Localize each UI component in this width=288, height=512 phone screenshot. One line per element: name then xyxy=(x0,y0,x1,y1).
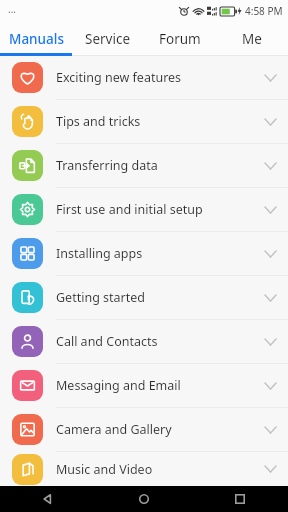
button[interactable]: Exciting new features xyxy=(0,56,288,100)
button[interactable]: Transferring data xyxy=(0,144,288,188)
button[interactable]: Recents xyxy=(192,486,288,512)
staticText: First use and initial setup xyxy=(56,201,265,218)
button[interactable]: Call and Contacts xyxy=(0,320,288,364)
button[interactable]: Installing apps xyxy=(0,232,288,276)
other: Expand Camera and Gallery xyxy=(265,427,276,433)
button[interactable]: Camera and Gallery xyxy=(0,408,288,452)
button[interactable]: Forum xyxy=(144,22,216,56)
other: Expand Exciting new features xyxy=(265,75,276,81)
staticText: Service xyxy=(85,30,131,48)
button[interactable]: Manuals xyxy=(0,22,72,56)
other: Expand Getting started xyxy=(265,295,276,301)
staticText: Forum xyxy=(159,30,201,48)
staticText: Exciting new features xyxy=(56,69,265,86)
staticText: Tips and tricks xyxy=(56,113,265,130)
other: Expand Messaging and Email xyxy=(265,383,276,389)
other: Expand Tips and tricks xyxy=(265,119,276,125)
staticText: Me xyxy=(242,30,262,48)
staticText: Messaging and Email xyxy=(56,377,265,394)
button[interactable]: Back xyxy=(0,486,96,512)
button[interactable]: Home xyxy=(96,486,192,512)
button[interactable]: Tips and tricks xyxy=(0,100,288,144)
staticText: Music and Video xyxy=(56,461,265,478)
staticText: Camera and Gallery xyxy=(56,421,265,438)
button[interactable]: Music and Video xyxy=(0,452,288,486)
other: Expand Music and Video xyxy=(265,466,276,472)
other: Expand Transferring data xyxy=(265,163,276,169)
button[interactable]: First use and initial setup xyxy=(0,188,288,232)
other: Expand Installing apps xyxy=(265,251,276,257)
other: Expand Call and Contacts xyxy=(265,339,276,345)
button[interactable]: Service xyxy=(72,22,144,56)
button[interactable]: Me xyxy=(216,22,288,56)
staticText: Installing apps xyxy=(56,245,265,262)
staticText: Transferring data xyxy=(56,157,265,174)
button[interactable]: Getting started xyxy=(0,276,288,320)
staticText: Getting started xyxy=(56,289,265,306)
staticText: Manuals xyxy=(9,30,64,48)
staticText: Call and Contacts xyxy=(56,333,265,350)
staticText: ... xyxy=(8,2,17,16)
staticText: 4:58 PM xyxy=(245,4,283,18)
button[interactable]: Messaging and Email xyxy=(0,364,288,408)
other: Expand First use and initial setup xyxy=(265,207,276,213)
